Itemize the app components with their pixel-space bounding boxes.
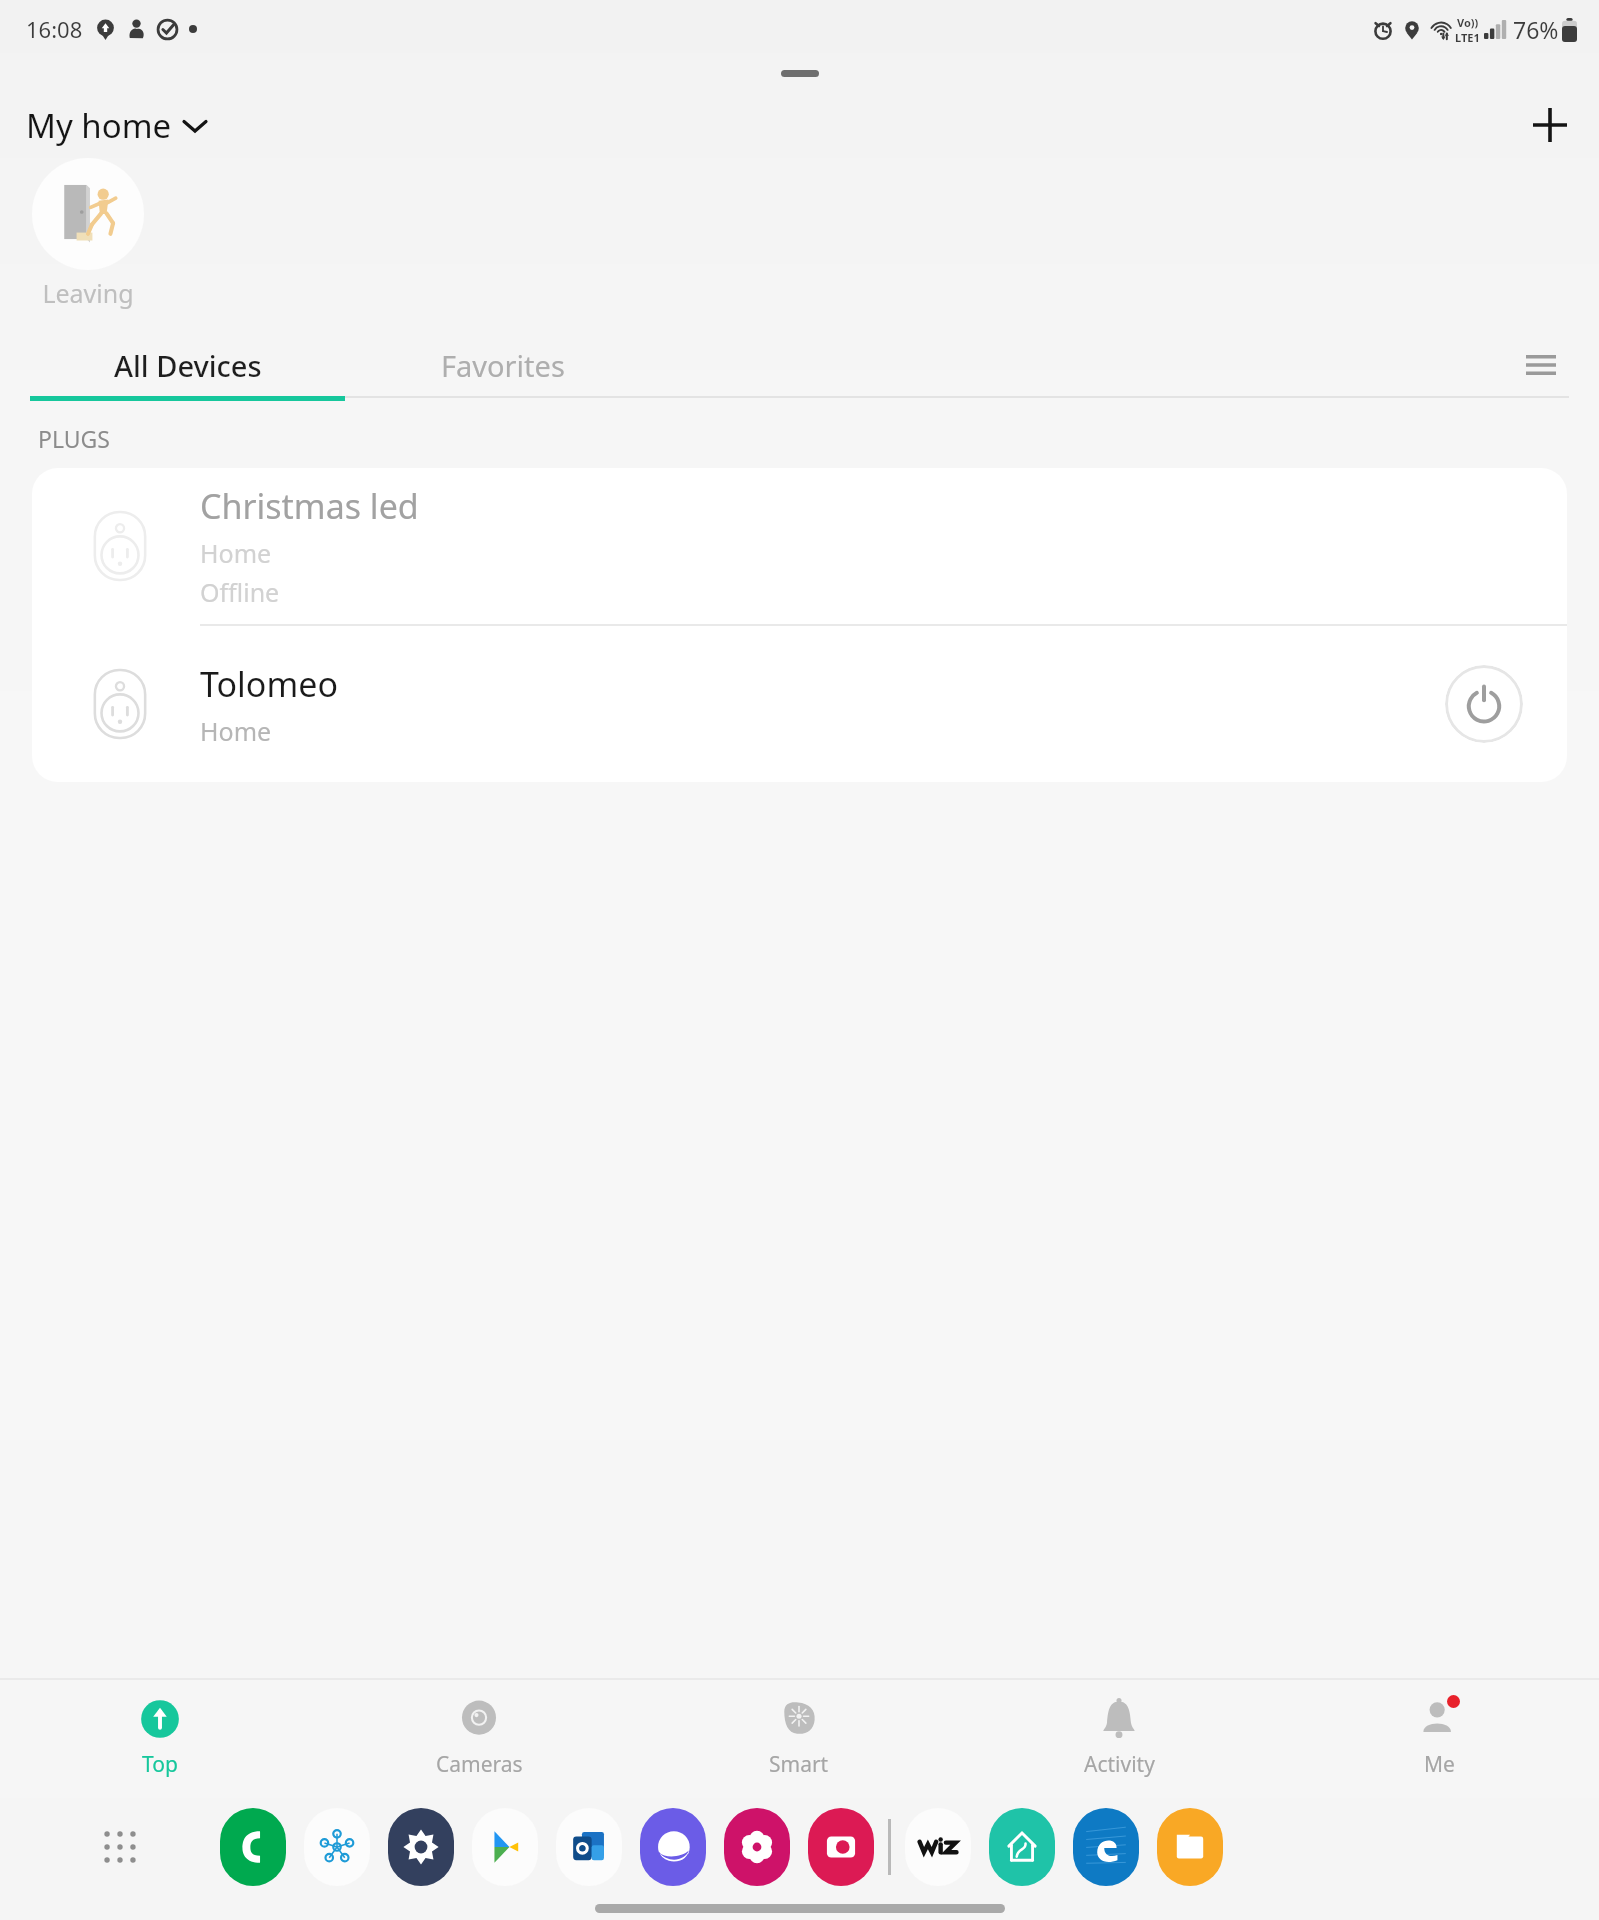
button[interactable]: Activity: [959, 1680, 1279, 1798]
staticText: Me: [1424, 1750, 1455, 1779]
button[interactable]: Add device: [1521, 96, 1579, 154]
button[interactable]: [304, 1808, 370, 1886]
staticText: 76%: [1513, 14, 1559, 45]
staticText: My home: [26, 103, 172, 148]
staticText: Leaving: [42, 276, 134, 310]
staticText: Offline: [200, 575, 280, 609]
staticText: Activity: [1084, 1750, 1155, 1779]
button[interactable]: Smart: [639, 1680, 959, 1798]
button[interactable]: [724, 1808, 790, 1886]
button[interactable]: [640, 1808, 706, 1886]
button[interactable]: [388, 1808, 454, 1886]
button[interactable]: [1073, 1808, 1139, 1886]
button[interactable]: [556, 1808, 622, 1886]
button[interactable]: Leaving: [30, 158, 146, 318]
staticText: PLUGS: [38, 423, 110, 454]
staticText: Smart: [769, 1750, 829, 1779]
button[interactable]: Christmas led: [32, 468, 1567, 624]
button[interactable]: [905, 1808, 971, 1886]
button[interactable]: Me: [1279, 1680, 1599, 1798]
button[interactable]: All Devices: [30, 334, 345, 396]
button[interactable]: [808, 1808, 874, 1886]
button[interactable]: All apps: [90, 1817, 150, 1877]
button[interactable]: Favorites: [345, 334, 660, 396]
staticText: Christmas led: [200, 483, 419, 529]
button[interactable]: [989, 1808, 1055, 1886]
staticText: Home: [200, 536, 272, 570]
staticText: 16:08: [26, 14, 83, 44]
button[interactable]: Tolomeo: [32, 626, 1567, 782]
staticText: Favorites: [441, 346, 565, 385]
staticText: Vo)): [1457, 15, 1479, 30]
staticText: All Devices: [114, 346, 262, 385]
button[interactable]: [220, 1808, 286, 1886]
staticText: Top: [142, 1750, 178, 1779]
staticText: Home: [200, 714, 272, 748]
button[interactable]: Cameras: [319, 1680, 639, 1798]
button[interactable]: [472, 1808, 538, 1886]
button[interactable]: Power toggle: [1445, 665, 1523, 743]
button[interactable]: [1157, 1808, 1223, 1886]
staticText: Tolomeo: [200, 661, 338, 707]
staticText: Cameras: [436, 1750, 523, 1779]
button[interactable]: Top: [0, 1680, 319, 1798]
button[interactable]: My home: [18, 97, 214, 154]
staticText: LTE1: [1455, 30, 1480, 45]
button[interactable]: Edit list: [1513, 337, 1569, 393]
